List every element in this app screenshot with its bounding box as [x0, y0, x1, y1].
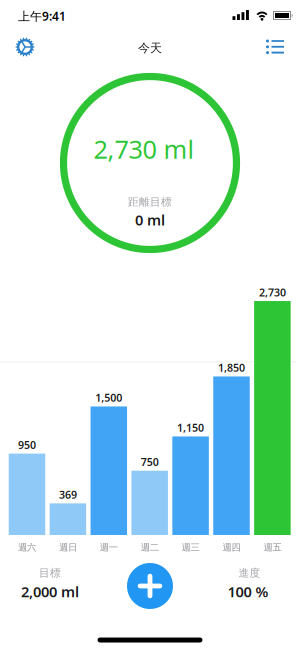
staticText: 1,500 [95, 391, 122, 405]
staticText: 2,000 ml [21, 582, 79, 601]
staticText: 100 % [227, 582, 268, 601]
staticText: 週二 [141, 542, 159, 553]
staticText: 今天 [138, 41, 162, 55]
staticText: 2,730 [259, 285, 286, 299]
staticText: 週五 [263, 542, 281, 553]
staticText: 目標 [39, 566, 61, 579]
staticText: 上午9:41 [18, 8, 66, 24]
button[interactable]: Settings [10, 32, 40, 62]
staticText: 週一 [100, 542, 118, 553]
staticText: 距離目標 [128, 195, 172, 208]
staticText: 750 [141, 455, 159, 469]
staticText: 週日 [59, 542, 77, 553]
staticText: 週四 [222, 542, 240, 553]
staticText: 週六 [18, 542, 36, 553]
staticText: 1,850 [218, 361, 245, 375]
staticText: 1,150 [177, 421, 204, 435]
button[interactable]: Add water [127, 563, 173, 609]
staticText: 950 [18, 438, 36, 452]
staticText: 週三 [182, 542, 200, 553]
staticText: 2,730 ml [93, 132, 194, 166]
button[interactable]: History [261, 34, 289, 60]
staticText: 進度 [238, 566, 260, 579]
staticText: 0 ml [135, 210, 165, 230]
staticText: 369 [59, 487, 77, 502]
